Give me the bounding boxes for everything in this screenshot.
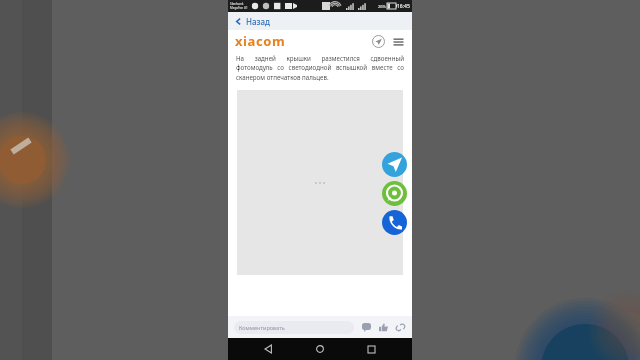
button[interactable]: Telegram (382, 152, 407, 177)
staticText: Назад (246, 16, 270, 27)
staticText: Комментировать (239, 324, 285, 331)
button[interactable]: Menu (392, 35, 405, 48)
button[interactable]: Back (259, 339, 279, 359)
button[interactable]: Комментировать (234, 321, 354, 334)
button[interactable]: Subscribe on Telegram (372, 35, 385, 48)
staticText: 26% (378, 4, 386, 9)
staticText: На задней крышки разместился сдвоенный ф… (236, 54, 404, 82)
staticText: 16:45 (397, 3, 410, 10)
button[interactable]: Home (310, 339, 330, 359)
staticText: MegaFon #1 (230, 6, 248, 10)
button[interactable]: Call (382, 210, 407, 235)
staticText: xiacom (235, 32, 286, 50)
button[interactable]: Назад (228, 12, 412, 30)
button[interactable]: Comments (361, 322, 372, 333)
button[interactable]: Copy link (395, 322, 406, 333)
button[interactable]: WhatsApp (382, 181, 407, 206)
button[interactable]: Like (378, 322, 389, 333)
button[interactable]: Recents (361, 339, 381, 359)
button[interactable]: Xiacom home (235, 32, 286, 50)
staticText: Sberbank (230, 2, 244, 6)
